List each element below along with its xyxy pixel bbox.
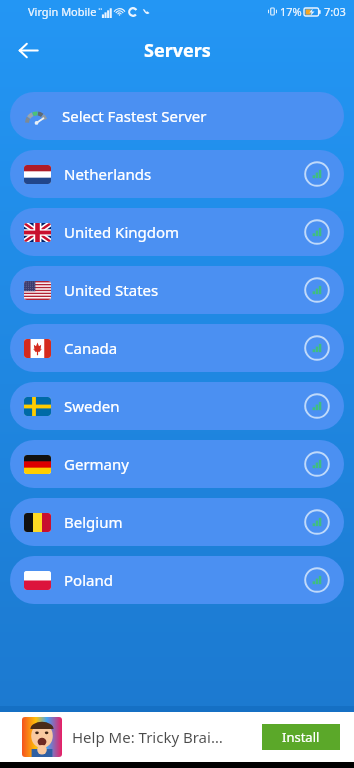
button[interactable]: Sweden — [10, 382, 344, 430]
button[interactable]: Belgium — [10, 498, 344, 546]
staticText: Belgium — [64, 512, 304, 532]
button[interactable]: Help Me: Tricky Brai… — [0, 712, 354, 762]
staticText: Sweden — [64, 396, 304, 416]
staticText: Servers — [144, 38, 211, 63]
button[interactable]: United States — [10, 266, 344, 314]
staticText: Help Me: Tricky Brai… — [72, 727, 256, 747]
staticText: 7:03 — [324, 4, 346, 19]
staticText: United States — [64, 280, 304, 300]
button[interactable]: United Kingdom — [10, 208, 344, 256]
button[interactable]: Canada — [10, 324, 344, 372]
staticText: Netherlands — [64, 164, 304, 184]
staticText: Install — [282, 728, 320, 746]
button[interactable]: Select Fastest Server — [10, 92, 344, 140]
button[interactable]: Install — [262, 724, 340, 750]
staticText: 17% — [280, 4, 302, 19]
staticText: United Kingdom — [64, 222, 304, 242]
button[interactable]: Back — [10, 32, 46, 68]
staticText: Virgin Mobile — [28, 4, 97, 19]
staticText: Select Fastest Server — [62, 106, 207, 126]
button[interactable]: Netherlands — [10, 150, 344, 198]
staticText: Germany — [64, 454, 304, 474]
button[interactable]: Germany — [10, 440, 344, 488]
button[interactable]: Poland — [10, 556, 344, 604]
staticText: Poland — [64, 570, 304, 590]
staticText: Canada — [64, 338, 304, 358]
